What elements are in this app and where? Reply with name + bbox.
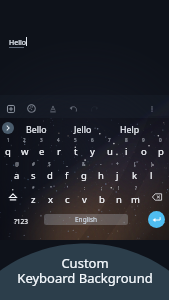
button[interactable]: More options xyxy=(141,97,162,120)
staticText: s xyxy=(31,169,36,182)
staticText: Help xyxy=(120,124,140,136)
staticText: c xyxy=(65,193,70,206)
staticText: : xyxy=(84,185,86,191)
staticText: t xyxy=(74,145,78,158)
staticText: Keyboard Background xyxy=(17,269,153,287)
staticText: English xyxy=(75,215,98,224)
staticText: $ xyxy=(48,161,51,167)
button[interactable]: & xyxy=(75,160,92,184)
button[interactable]: ( xyxy=(126,160,143,184)
button[interactable]: + xyxy=(109,160,126,184)
staticText: j xyxy=(116,169,119,182)
staticText: _ xyxy=(66,161,68,167)
button[interactable]: Shift xyxy=(0,184,25,208)
button[interactable]: * xyxy=(25,184,42,208)
button[interactable]: 9 xyxy=(135,136,152,160)
button[interactable]: 2 xyxy=(16,136,33,160)
button[interactable]: Backspace xyxy=(144,184,169,208)
button[interactable]: Theme xyxy=(21,97,42,120)
staticText: y xyxy=(90,145,95,158)
staticText: 1 xyxy=(7,137,10,143)
button[interactable]: # xyxy=(25,160,41,184)
staticText: l xyxy=(150,169,153,182)
staticText: ?123 xyxy=(14,217,28,226)
button[interactable]: ' xyxy=(59,184,76,208)
staticText: u xyxy=(107,145,113,158)
staticText: 4 xyxy=(57,137,60,143)
staticText: 8 xyxy=(125,137,128,143)
button[interactable]: ; xyxy=(93,184,110,208)
button[interactable]: 0 xyxy=(152,136,169,160)
staticText: 3 xyxy=(40,137,43,143)
button[interactable]: 6 xyxy=(84,136,101,160)
button[interactable]: : xyxy=(76,184,93,208)
button[interactable]: ? xyxy=(127,184,144,208)
button[interactable]: English xyxy=(44,214,128,225)
button[interactable]: - xyxy=(92,160,109,184)
staticText: q xyxy=(5,145,11,158)
staticText: + xyxy=(116,161,119,167)
button[interactable]: Help xyxy=(106,121,153,139)
staticText: o xyxy=(141,145,147,158)
staticText: d xyxy=(47,169,53,182)
staticText: - xyxy=(100,161,102,167)
button[interactable]: $ xyxy=(41,160,58,184)
staticText: Jello xyxy=(74,124,92,136)
button[interactable]: Jello xyxy=(59,121,106,139)
staticText: x xyxy=(48,193,54,206)
button[interactable]: Enter xyxy=(148,211,165,228)
staticText: ! xyxy=(118,185,120,191)
staticText: b xyxy=(99,193,105,206)
button[interactable]: ! xyxy=(110,184,127,208)
button[interactable]: Insert xyxy=(0,97,21,120)
staticText: n xyxy=(116,193,122,206)
staticText: i xyxy=(125,145,128,158)
staticText: r xyxy=(57,145,61,158)
staticText: g xyxy=(81,169,87,182)
staticText: Custom xyxy=(61,254,109,272)
staticText: Hello xyxy=(9,38,26,48)
button[interactable]: Undo xyxy=(63,97,84,120)
button[interactable]: Expand toolbar xyxy=(1,119,15,137)
staticText: m xyxy=(131,193,140,206)
staticText: ; xyxy=(101,185,103,191)
staticText: ) xyxy=(151,161,153,167)
button[interactable]: 3 xyxy=(33,136,50,160)
staticText: @ xyxy=(15,161,20,167)
button[interactable]: 5 xyxy=(67,136,84,160)
staticText: ' xyxy=(67,185,69,191)
staticText: & xyxy=(82,161,86,167)
button[interactable]: 1 xyxy=(0,136,16,160)
button[interactable]: @ xyxy=(9,160,25,184)
staticText: h xyxy=(98,169,104,182)
staticText: p xyxy=(158,145,164,158)
staticText: Bello xyxy=(26,124,47,136)
staticText: # xyxy=(32,161,35,167)
staticText: 2 xyxy=(23,137,26,143)
button[interactable]: Format text xyxy=(42,97,63,120)
staticText: " xyxy=(50,185,52,191)
button[interactable]: Bello xyxy=(13,121,59,139)
staticText: e xyxy=(39,145,45,158)
staticText: ( xyxy=(134,161,136,167)
button[interactable]: 8 xyxy=(118,136,135,160)
staticText: 6 xyxy=(91,137,94,143)
staticText: 5 xyxy=(74,137,77,143)
staticText: * xyxy=(32,185,35,191)
button[interactable]: _ xyxy=(58,160,75,184)
button[interactable]: ?123 xyxy=(8,208,34,232)
staticText: 9 xyxy=(142,137,145,143)
button[interactable]: 7 xyxy=(101,136,118,160)
staticText: v xyxy=(82,193,87,206)
staticText: w xyxy=(21,145,29,158)
staticText: 7 xyxy=(108,137,111,143)
button[interactable]: " xyxy=(42,184,59,208)
button[interactable]: ) xyxy=(143,160,160,184)
staticText: a xyxy=(14,169,20,182)
staticText: 0 xyxy=(159,137,162,143)
staticText: f xyxy=(65,169,69,182)
staticText: z xyxy=(31,193,36,206)
staticText: k xyxy=(132,169,138,182)
button[interactable]: 4 xyxy=(50,136,67,160)
